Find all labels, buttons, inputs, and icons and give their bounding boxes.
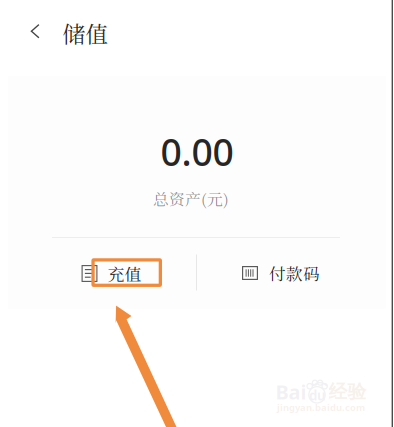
staticText: 付款码 (269, 261, 320, 285)
staticText: jingyan.baidu.com (277, 401, 365, 413)
button[interactable]: 充值 (46, 251, 176, 295)
staticText: Bai (275, 378, 306, 405)
staticText: 总资产(元) (153, 187, 229, 210)
staticText: 充值 (107, 261, 141, 285)
staticText: 0.00 (160, 127, 233, 176)
staticText: 经验 (328, 380, 366, 403)
staticText: 储值 (62, 17, 108, 49)
button[interactable]: Back (15, 9, 55, 53)
staticText: du (309, 386, 326, 404)
button[interactable]: 付款码 (216, 251, 346, 295)
